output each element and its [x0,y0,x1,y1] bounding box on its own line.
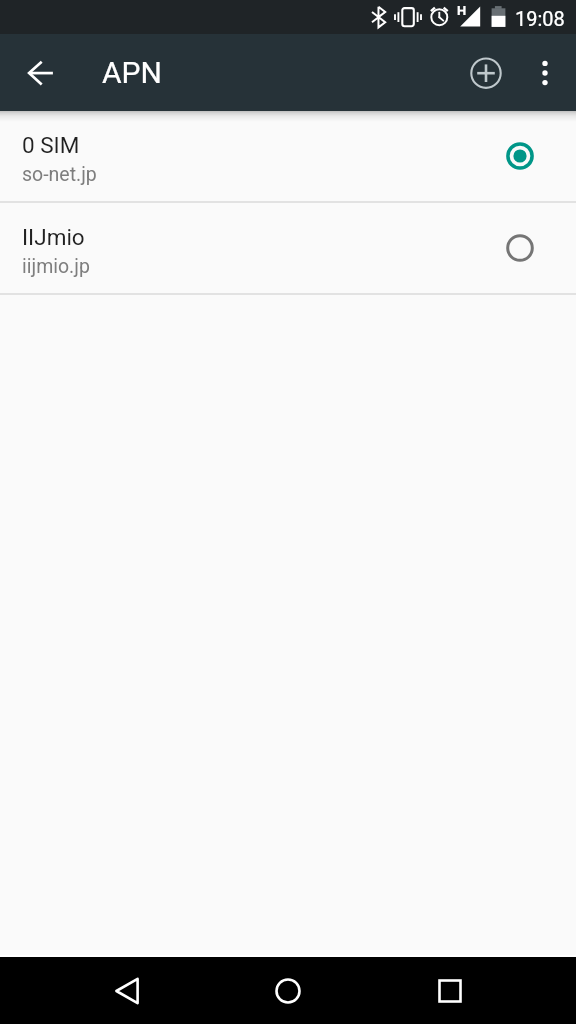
button[interactable]: 0 SIM selected [496,132,544,180]
button[interactable]: More options [519,48,571,98]
button[interactable]: Navigate up [9,48,73,98]
button[interactable]: IIJmio [0,203,576,293]
staticText: 19:08 [515,7,565,30]
staticText: H [457,3,467,18]
button[interactable]: 0 SIM [0,111,576,201]
button[interactable]: Recent apps [420,957,480,1024]
button[interactable]: Back [96,957,156,1024]
staticText: so-net.jp [22,163,97,186]
button[interactable]: Home [258,957,318,1024]
button[interactable]: Select IIJmio [496,224,544,272]
staticText: IIJmio [22,224,85,250]
staticText: APN [102,55,162,90]
staticText: iijmio.jp [22,255,90,278]
button[interactable]: Add APN [458,48,514,98]
staticText: 0 SIM [22,132,80,158]
